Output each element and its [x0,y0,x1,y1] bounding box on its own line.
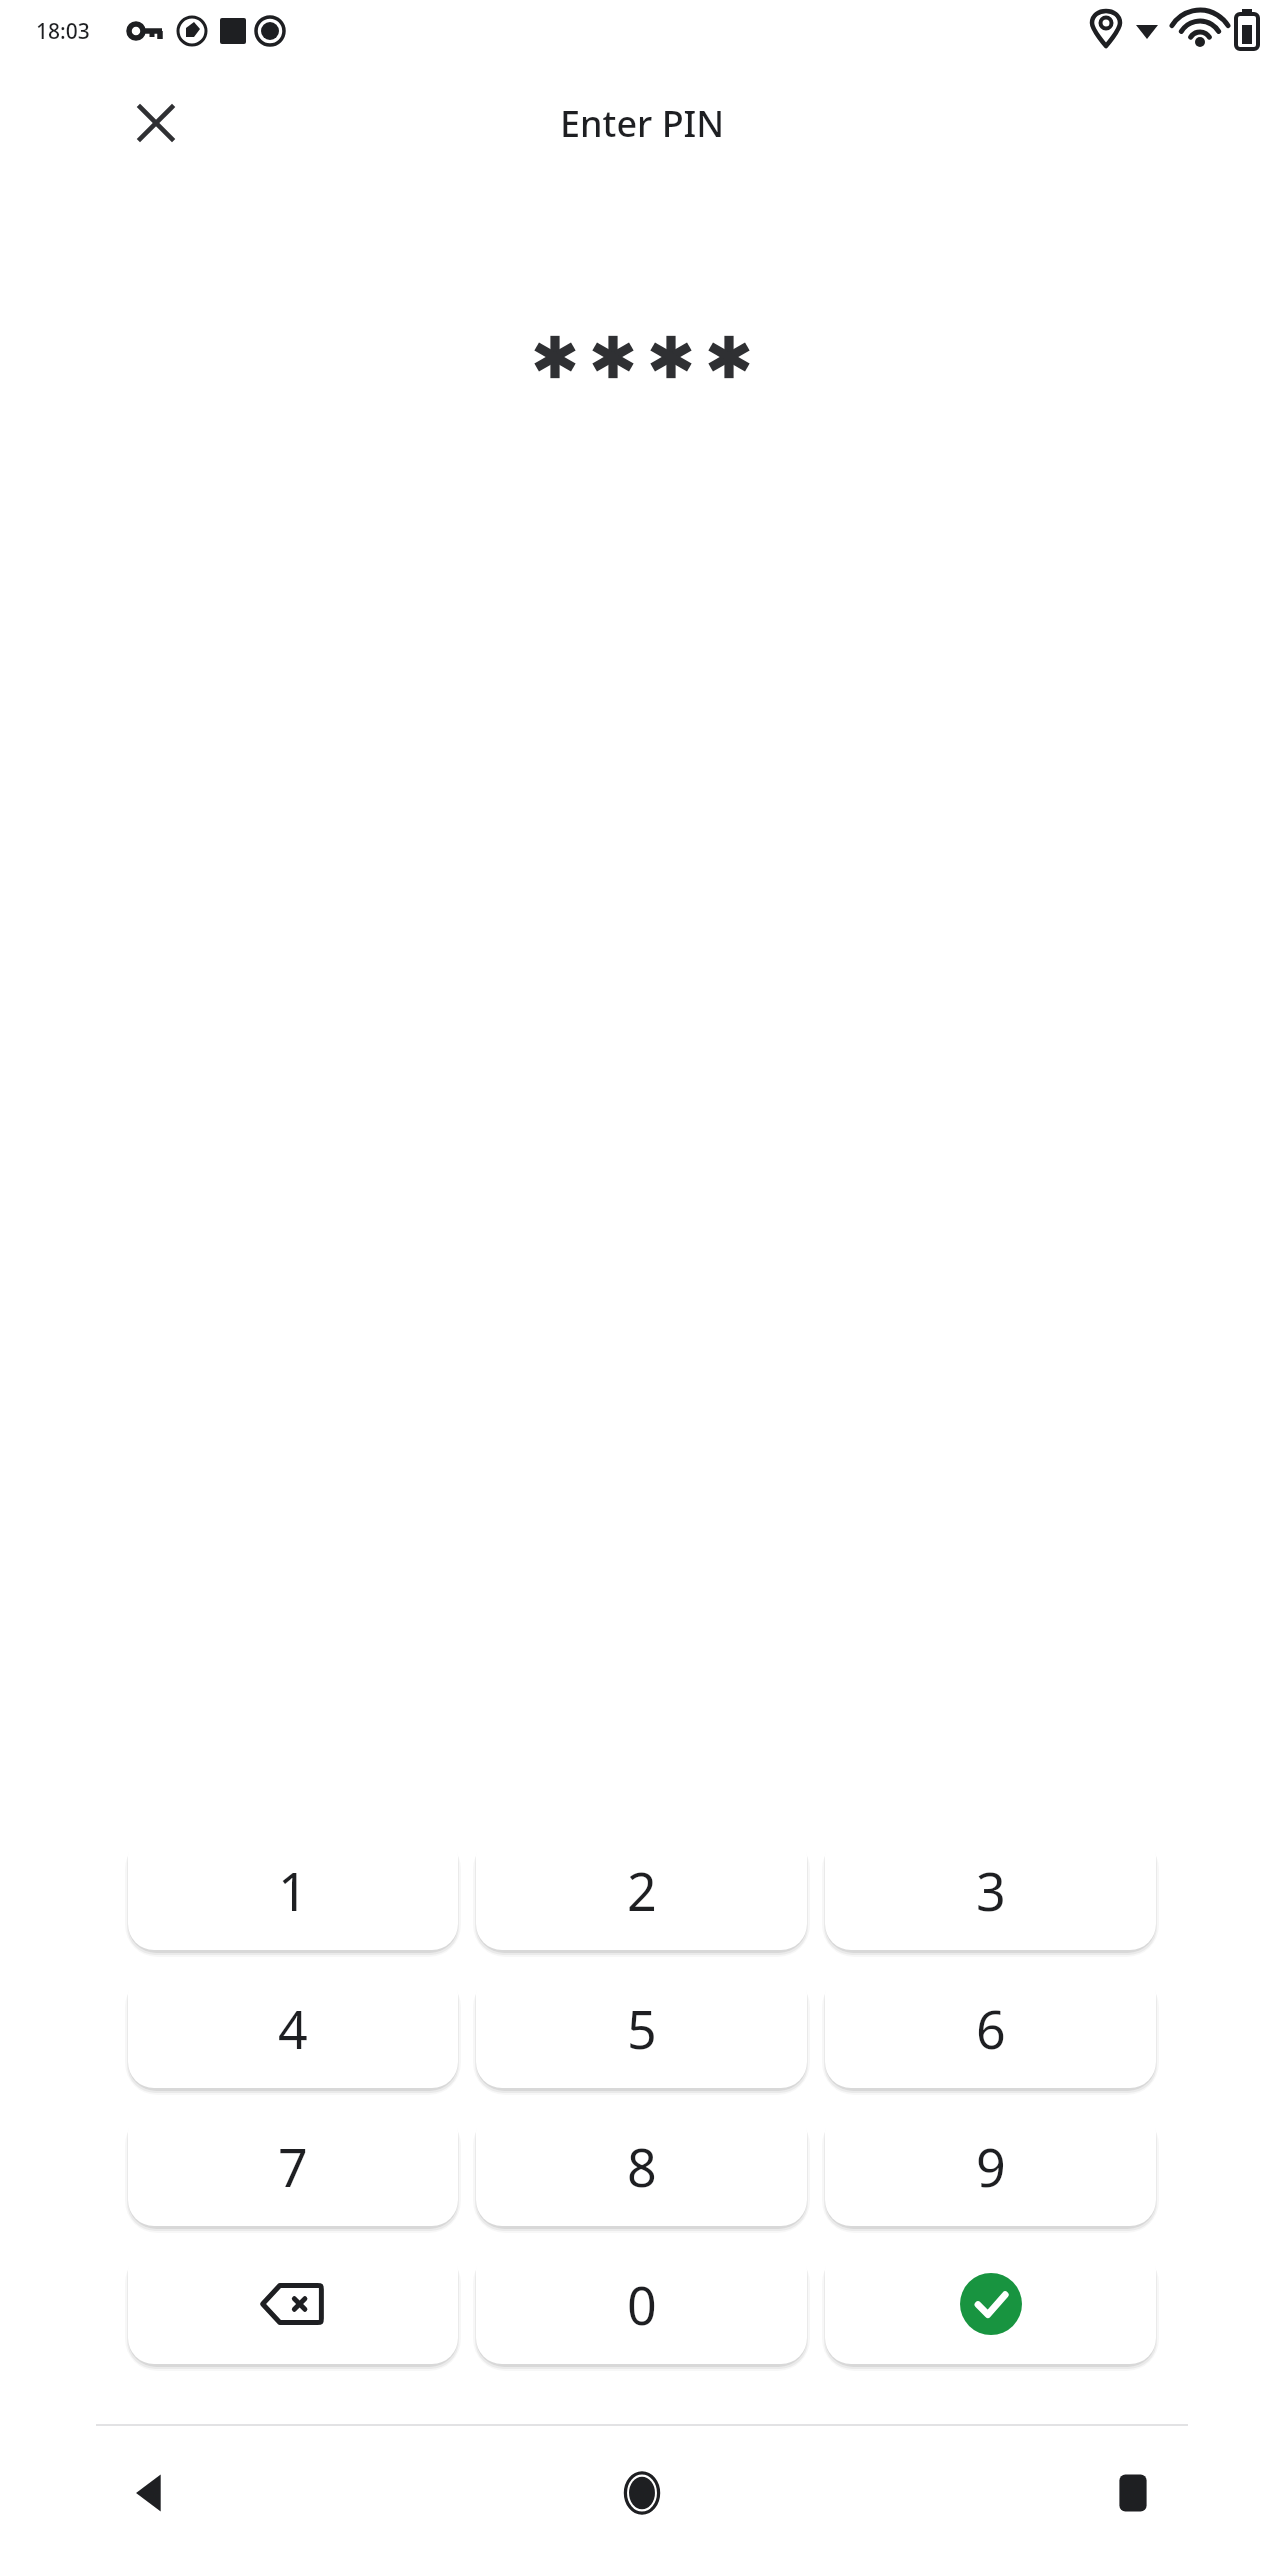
button[interactable]: 4 [128,1968,458,2088]
staticText: 0 [627,2269,657,2340]
staticText: Enter PIN [560,99,725,148]
button[interactable]: Confirm [825,2244,1156,2364]
staticText: 8 [627,2131,657,2202]
button[interactable]: Close [118,85,194,161]
staticText: 1 [278,1855,308,1926]
staticText: 4 [278,1993,308,2064]
button[interactable]: Home [587,2438,697,2548]
staticText: 5 [627,1993,657,2064]
staticText: 18:03 [36,17,90,46]
button[interactable]: 6 [825,1968,1156,2088]
staticText: 2 [627,1855,657,1926]
button[interactable]: 9 [825,2106,1156,2226]
staticText: 3 [976,1855,1006,1926]
button[interactable]: 5 [476,1968,807,2088]
button[interactable]: 2 [476,1830,807,1950]
button[interactable]: 1 [128,1830,458,1950]
button[interactable]: 3 [825,1830,1156,1950]
button[interactable]: Backspace [128,2244,458,2364]
staticText: 6 [976,1993,1006,2064]
staticText: 9 [976,2131,1006,2202]
button[interactable]: 7 [128,2106,458,2226]
button[interactable]: 8 [476,2106,807,2226]
button[interactable]: Recent apps [1078,2438,1188,2548]
button[interactable]: Back [96,2438,206,2548]
staticText: 7 [278,2131,308,2202]
button[interactable]: 0 [476,2244,807,2364]
